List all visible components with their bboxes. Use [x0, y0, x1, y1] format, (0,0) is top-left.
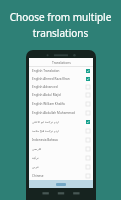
button[interactable]: English Advanced	[29, 83, 93, 91]
staticText: English Abdullah Muhammad	[32, 111, 84, 115]
button[interactable]: Not selected	[86, 138, 90, 142]
button[interactable]: Chinese	[29, 171, 93, 180]
button[interactable]: Not selected	[86, 93, 90, 97]
button[interactable]: Not selected	[86, 102, 90, 106]
staticText: Choose from multiple	[4, 10, 117, 24]
staticText: عربي	[32, 165, 84, 169]
staticText: فارسی	[32, 147, 84, 151]
staticText: Translations	[52, 60, 71, 64]
button[interactable]: Not selected	[86, 111, 90, 115]
button[interactable]: اردو ترجمہ فتح محمد	[29, 126, 93, 135]
button[interactable]: English Translation	[29, 67, 93, 75]
button[interactable]: Selected	[86, 69, 90, 73]
button[interactable]: English William Khalifa	[29, 99, 93, 108]
button[interactable]: تركية	[29, 153, 93, 162]
button[interactable]: Selected	[86, 77, 90, 81]
button[interactable]: عربي	[29, 162, 93, 171]
button[interactable]: اردو ترجمہ ابو الاعلی	[29, 117, 93, 126]
button[interactable]: فارسی	[29, 144, 93, 153]
button[interactable]: Not selected	[86, 174, 90, 178]
staticText: translations	[4, 26, 117, 40]
button[interactable]: Translations	[29, 58, 93, 66]
button[interactable]: Not selected	[86, 85, 90, 89]
button[interactable]: Indonesia Bahasa	[29, 135, 93, 144]
staticText: Indonesia Bahasa	[32, 138, 84, 142]
button[interactable]: Selected	[86, 120, 90, 124]
button[interactable]: English Abdullah Muhammad	[29, 108, 93, 117]
staticText: English Abdul Majid	[32, 93, 84, 97]
button[interactable]: Not selected	[86, 129, 90, 133]
staticText: تركية	[32, 156, 84, 160]
staticText: English William Khalifa	[32, 102, 84, 106]
button[interactable]: English Ahmed Raza Khan	[29, 75, 93, 83]
button[interactable]: Not selected	[86, 147, 90, 151]
staticText: اردو ترجمہ ابو الاعلی	[32, 120, 84, 124]
button[interactable]: English Abdul Majid	[29, 91, 93, 99]
button[interactable]: Not selected	[86, 156, 90, 160]
staticText: English Ahmed Raza Khan	[32, 77, 84, 81]
staticText: English Translation	[32, 69, 84, 73]
staticText: اردو ترجمہ فتح محمد	[32, 129, 84, 133]
staticText: English Advanced	[32, 85, 84, 89]
staticText: Chinese	[32, 174, 84, 178]
button[interactable]	[29, 180, 93, 188]
button[interactable]: Not selected	[86, 165, 90, 169]
